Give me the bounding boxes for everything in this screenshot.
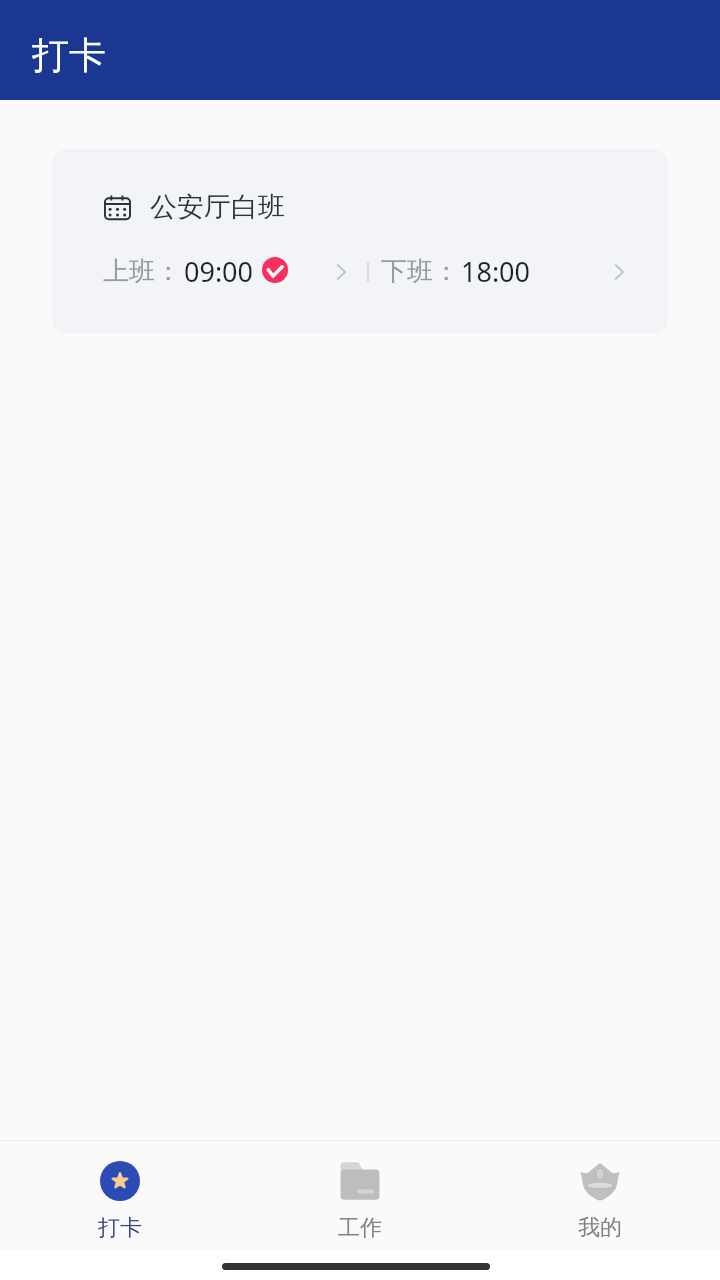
staticText: 我的 [578, 1214, 622, 1242]
button[interactable]: 公安厅白班 [52, 149, 668, 333]
staticText: 上班： [103, 255, 181, 288]
staticText: 09:00 [184, 253, 254, 290]
staticText: 工作 [338, 1214, 382, 1242]
button[interactable]: 工作 [240, 1141, 480, 1242]
staticText: 下班： [381, 255, 459, 288]
staticText: 打卡 [98, 1214, 142, 1242]
staticText: 公安厅白班 [150, 190, 285, 224]
button[interactable]: 我的 [480, 1141, 720, 1242]
button[interactable]: 下班 18:00 [381, 253, 627, 290]
other: 工作 [340, 1161, 380, 1201]
button[interactable]: 打卡 [0, 1141, 240, 1242]
other: 打卡 [100, 1161, 140, 1201]
other: 我的 [580, 1161, 620, 1201]
staticText: 18:00 [461, 253, 531, 290]
staticText: 打卡 [32, 32, 106, 79]
button[interactable]: 上班 09:00 已打卡 [103, 253, 349, 290]
